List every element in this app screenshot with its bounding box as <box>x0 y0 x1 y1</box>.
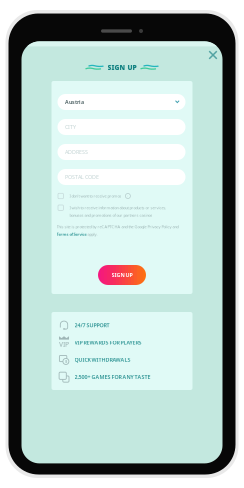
button[interactable]: POSTAL CODE <box>57 169 185 185</box>
staticText: This site is protected by reCAPTCHA and … <box>56 224 178 229</box>
staticText: 24/7 SUPPORT <box>74 322 109 329</box>
staticText: apply. <box>86 231 97 237</box>
button[interactable]: I don't want to receive promos <box>58 191 130 200</box>
staticText: I wish to receive information about prod… <box>69 205 166 210</box>
staticText: I don't want to receive promos <box>69 193 121 199</box>
staticText: SIGN UP <box>107 63 136 72</box>
staticText: 2,500+ GAMES FOR ANY TASTE <box>74 373 150 381</box>
button[interactable]: CITY <box>57 119 185 135</box>
staticText: $ <box>65 359 67 364</box>
staticText: CITY <box>65 123 76 131</box>
staticText: ADDRESS <box>65 148 88 156</box>
staticText: SIGN UP <box>111 271 132 279</box>
button[interactable]: Austria <box>57 94 185 110</box>
staticText: VIP <box>59 340 69 349</box>
staticText: Terms of Service <box>56 231 86 237</box>
button[interactable]: SIGN UP <box>98 265 146 285</box>
button[interactable]: Close <box>204 46 222 64</box>
button[interactable]: ADDRESS <box>57 144 185 160</box>
staticText: bonuses and promotions of our partners c… <box>69 212 152 218</box>
staticText: VIP REWARDS FOR PLAYERS <box>74 339 141 346</box>
staticText: Austria <box>65 98 84 106</box>
staticText: POSTAL CODE <box>65 173 99 181</box>
staticText: QUICK WITHDRAWALS <box>74 356 130 363</box>
button[interactable]: I wish to receive information about prod… <box>58 205 166 218</box>
staticText: i <box>127 193 128 199</box>
